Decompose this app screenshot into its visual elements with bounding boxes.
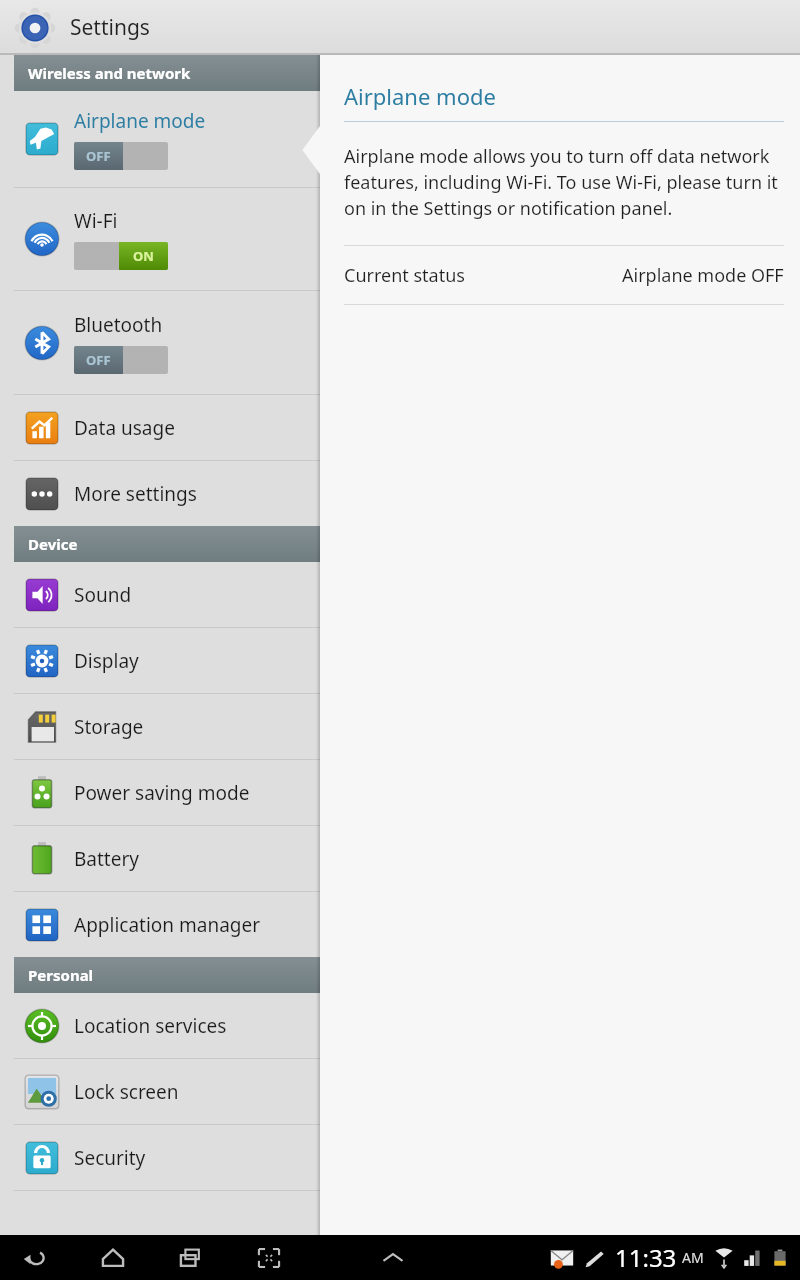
staticText: Airplane mode allows you to turn off dat… [344, 144, 784, 221]
button[interactable]: Screenshot [252, 1241, 286, 1275]
staticText: ON [133, 247, 154, 265]
staticText: Current status [344, 263, 465, 288]
staticText: 11:33 [615, 1241, 677, 1274]
staticText: OFF [86, 351, 111, 369]
staticText: Personal [28, 965, 94, 985]
button[interactable]: Data usage [0, 395, 320, 460]
staticText: Bluetooth [74, 312, 163, 338]
button[interactable]: More settings [0, 461, 320, 526]
staticText: Airplane mode OFF [622, 263, 784, 288]
staticText: Airplane mode [74, 108, 206, 134]
button[interactable]: Lock screen [0, 1059, 320, 1124]
button[interactable]: Security [0, 1125, 320, 1190]
button[interactable]: ON [74, 242, 168, 270]
button[interactable]: Application manager [0, 892, 320, 957]
button[interactable]: Back [18, 1241, 52, 1275]
staticText: OFF [86, 147, 111, 165]
staticText: Security [74, 1145, 146, 1171]
button[interactable]: OFF [74, 346, 168, 374]
staticText: Sound [74, 582, 132, 608]
staticText: AM [682, 1248, 704, 1267]
staticText: Storage [74, 714, 144, 740]
staticText: Airplane mode [344, 81, 496, 111]
button[interactable]: Home [96, 1241, 130, 1275]
staticText: Power saving mode [74, 780, 250, 806]
staticText: Display [74, 648, 139, 674]
button[interactable]: Airplane mode [0, 91, 320, 187]
button[interactable]: Display [0, 628, 320, 693]
staticText: Location services [74, 1013, 227, 1039]
button[interactable]: Power saving mode [0, 760, 320, 825]
staticText: Battery [74, 846, 139, 872]
button[interactable]: Sound [0, 562, 320, 627]
button[interactable]: Recents [174, 1241, 208, 1275]
button[interactable]: Wi-Fi [0, 188, 320, 290]
button[interactable]: Storage [0, 694, 320, 759]
button[interactable]: OFF [74, 142, 168, 170]
button[interactable]: Battery [0, 826, 320, 891]
staticText: Lock screen [74, 1079, 179, 1105]
staticText: More settings [74, 481, 197, 507]
staticText: Data usage [74, 415, 175, 441]
button[interactable]: Bluetooth [0, 291, 320, 394]
staticText: Settings [70, 13, 150, 42]
button[interactable]: Location services [0, 993, 320, 1058]
staticText: Wireless and network [28, 63, 191, 83]
staticText: Device [28, 534, 78, 554]
staticText: Wi-Fi [74, 208, 118, 234]
button[interactable]: Expand [376, 1241, 410, 1275]
staticText: Application manager [74, 912, 261, 938]
